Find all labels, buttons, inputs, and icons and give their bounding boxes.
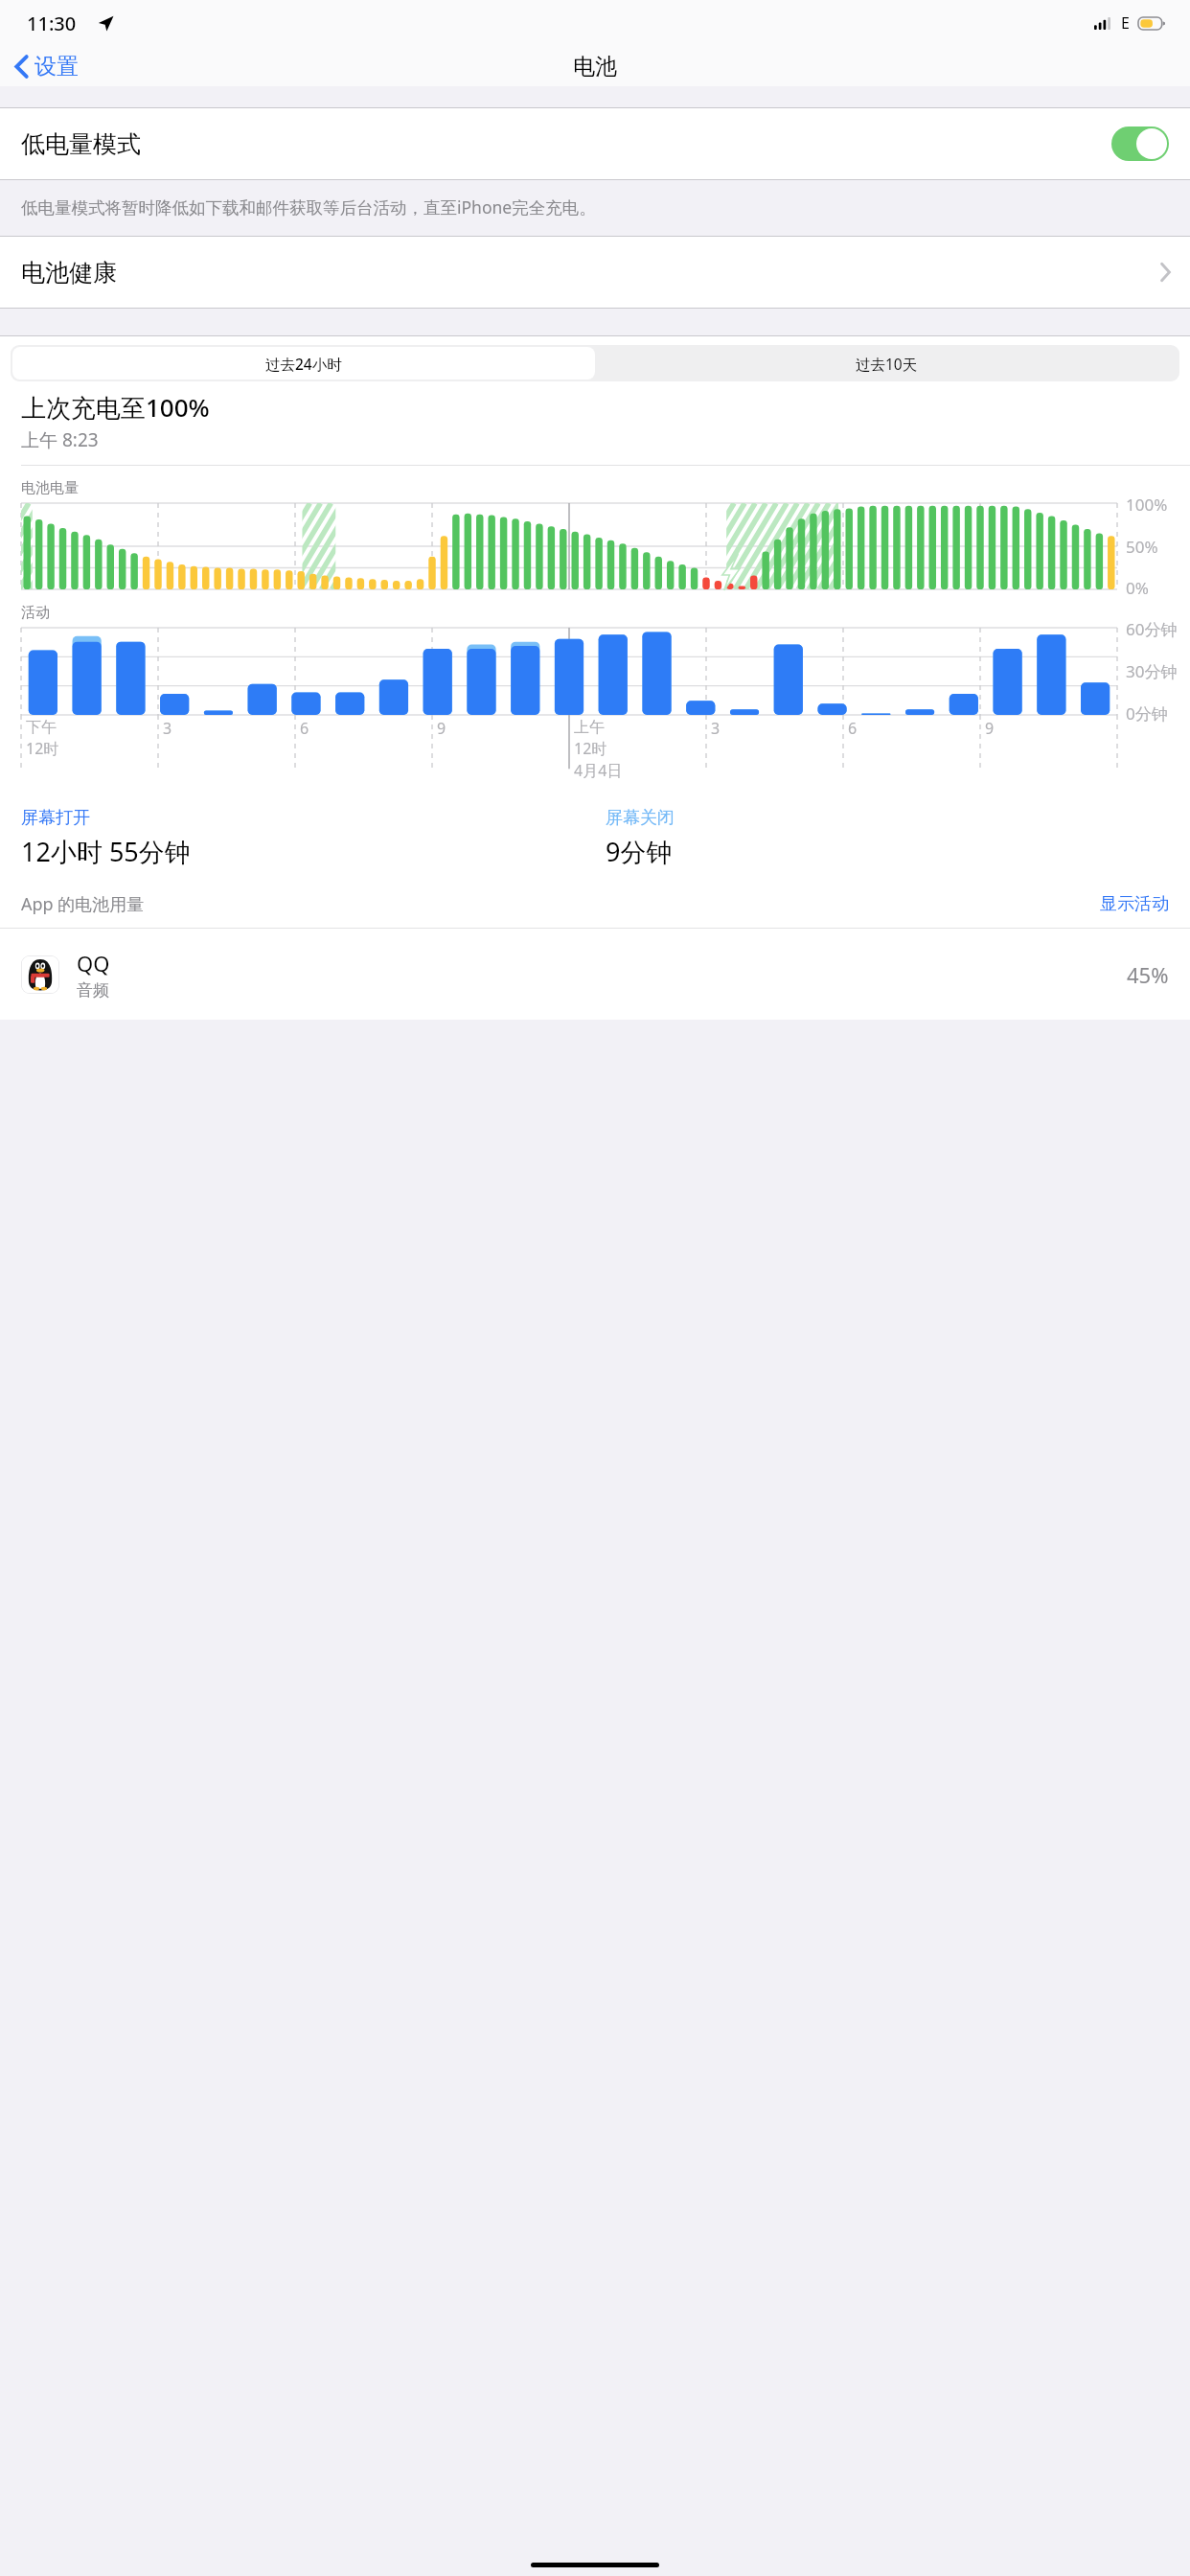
button[interactable]: 设置 — [0, 48, 92, 85]
button[interactable]: 过去24小时 — [12, 347, 595, 379]
staticText: 上午 12时 4月4日 — [574, 718, 623, 781]
staticText: QQ — [77, 949, 110, 977]
staticText: 12小时 55分钟 — [21, 834, 191, 869]
staticText: 6 — [300, 718, 309, 739]
staticText: 显示活动 — [1100, 893, 1169, 915]
staticText: 上次充电至100% — [21, 390, 210, 425]
button[interactable]: 低电量模式开关 — [1111, 126, 1169, 161]
staticText: 9 — [985, 718, 995, 739]
staticText: 低电量模式 — [21, 129, 141, 159]
staticText: E — [1121, 12, 1130, 34]
button[interactable]: 过去10天 — [595, 347, 1178, 379]
button[interactable]: 显示活动 — [1100, 893, 1169, 915]
staticText: 电池电量 — [21, 479, 79, 497]
staticText: 过去10天 — [856, 354, 918, 374]
staticText: 0% — [1126, 577, 1149, 599]
staticText: 6 — [848, 718, 858, 739]
staticText: 60分钟 — [1126, 618, 1178, 640]
staticText: 45% — [1127, 960, 1169, 989]
staticText: 设置 — [34, 53, 79, 80]
staticText: 30分钟 — [1126, 660, 1178, 682]
staticText: 3 — [711, 718, 721, 739]
staticText: App 的电池用量 — [21, 892, 145, 916]
staticText: 下午 12时 — [26, 718, 59, 759]
staticText: 0分钟 — [1126, 702, 1168, 724]
button[interactable]: 电池健康 — [0, 237, 1190, 308]
staticText: 11:30 — [27, 11, 77, 36]
staticText: 50% — [1126, 536, 1158, 558]
staticText: 音频 — [77, 980, 109, 1000]
staticText: 活动 — [21, 604, 50, 622]
staticText: 100% — [1126, 494, 1168, 516]
staticText: 低电量模式将暂时降低如下载和邮件获取等后台活动，直至iPhone完全充电。 — [21, 195, 596, 218]
staticText: 9 — [437, 718, 446, 739]
staticText: 电池健康 — [21, 258, 117, 287]
button[interactable]: QQ — [0, 929, 1190, 1020]
staticText: 9分钟 — [606, 834, 673, 869]
button[interactable]: 低电量模式 — [0, 108, 1190, 179]
staticText: 电池 — [573, 53, 617, 80]
staticText: 3 — [163, 718, 172, 739]
staticText: 屏幕关闭 — [606, 807, 675, 829]
staticText: 过去24小时 — [265, 354, 342, 374]
staticText: 屏幕打开 — [21, 807, 90, 829]
staticText: 上午 8:23 — [21, 427, 99, 452]
